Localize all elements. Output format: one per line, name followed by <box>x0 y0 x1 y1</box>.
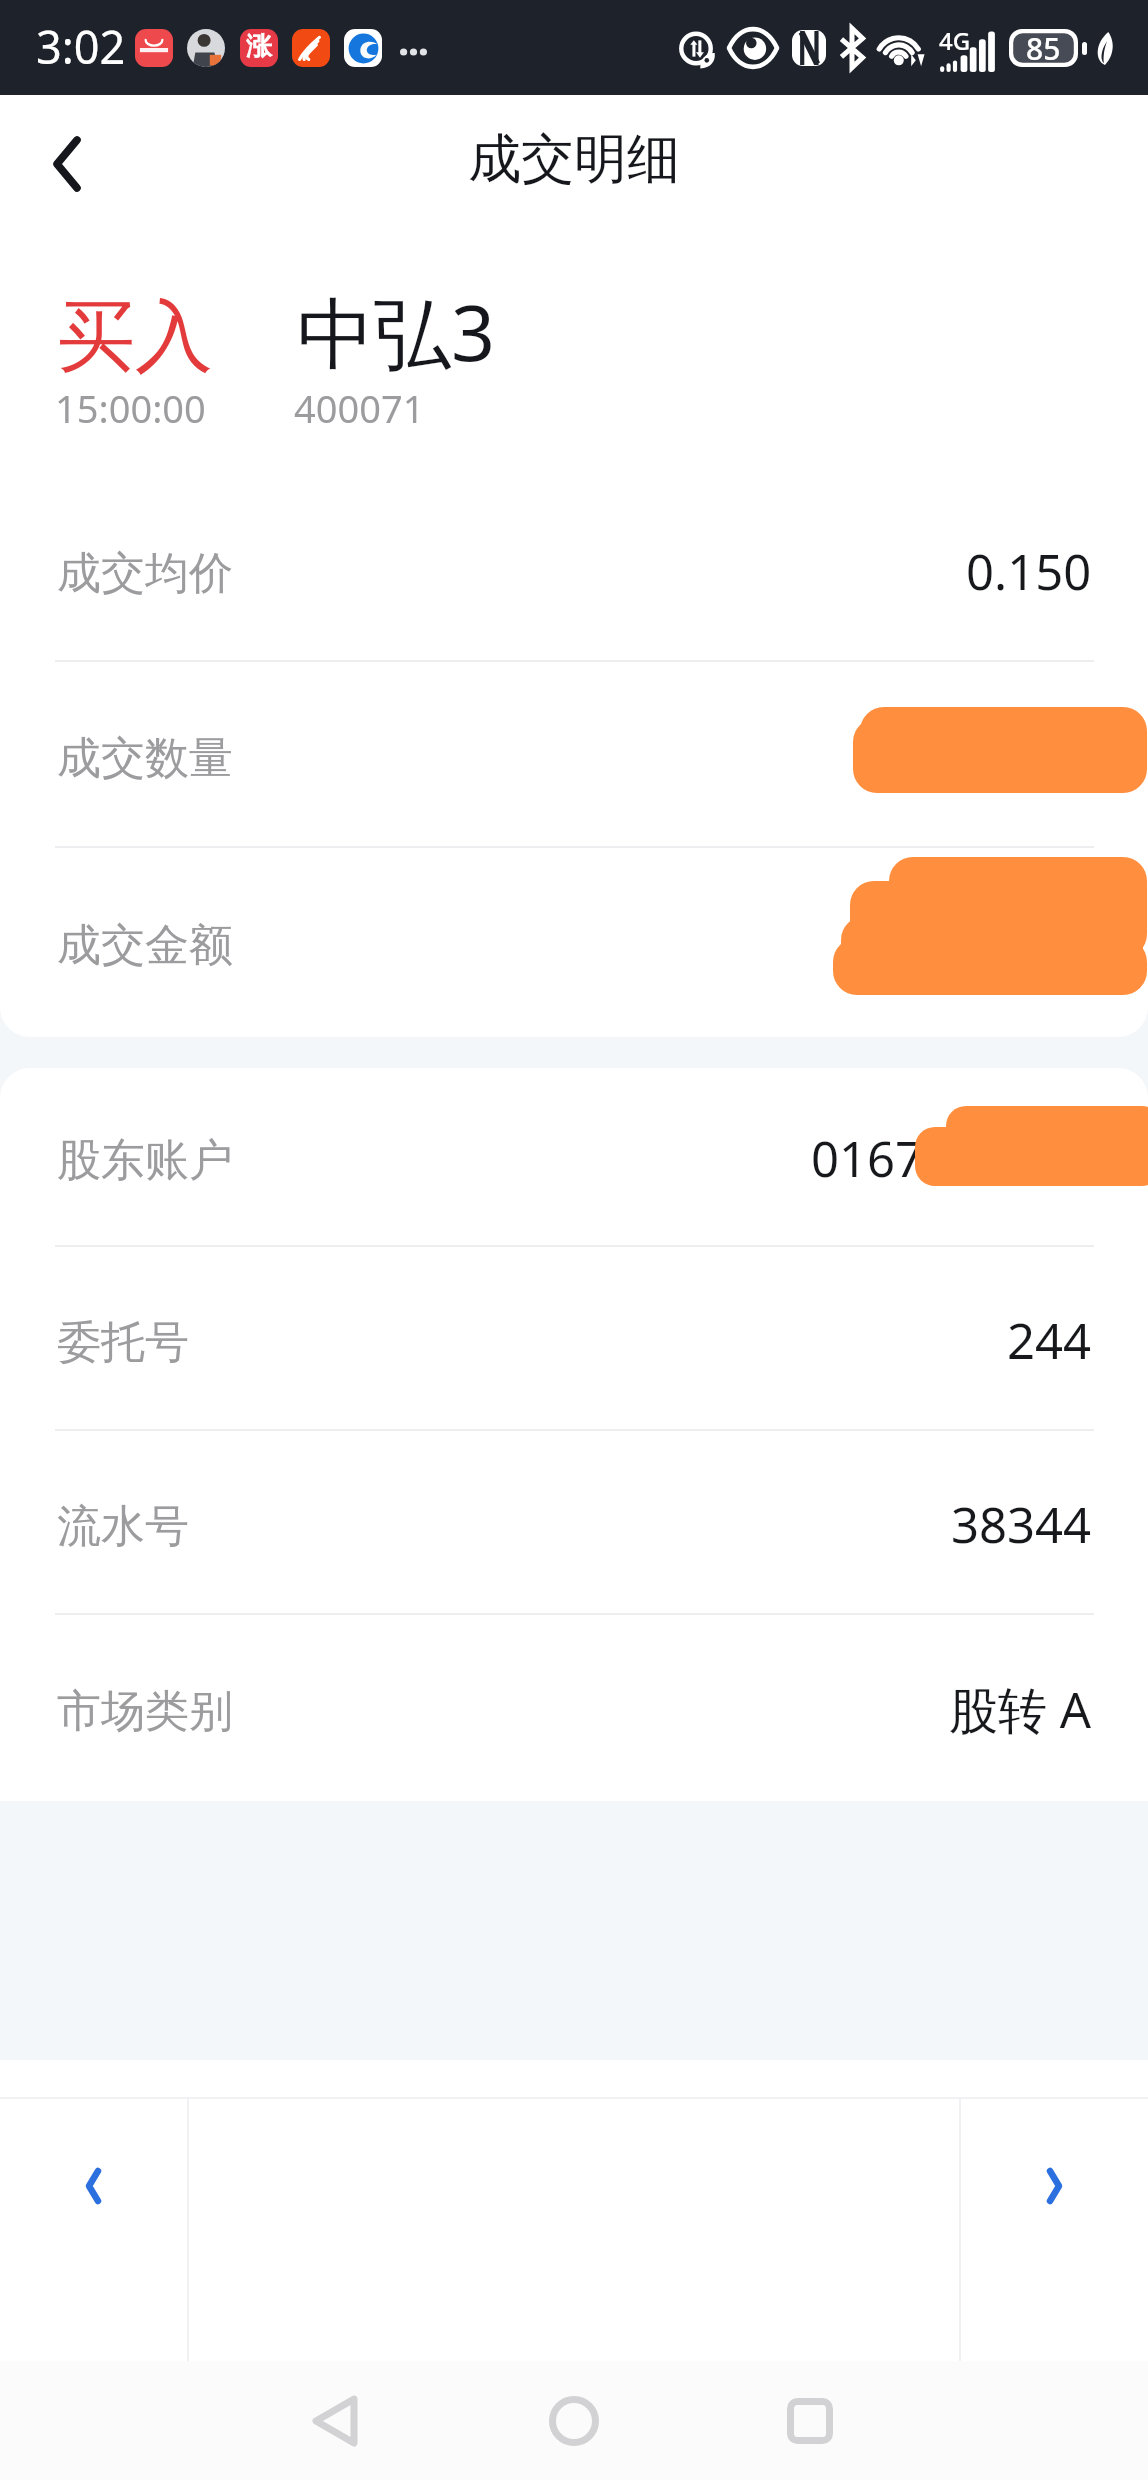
staticText: 85 <box>1026 28 1061 66</box>
button[interactable]: Recent apps <box>740 2361 880 2480</box>
staticText: 股转 A <box>949 1676 1092 1743</box>
button[interactable]: Back <box>2 99 132 229</box>
staticText: 成交数量 <box>57 731 233 786</box>
button[interactable]: Home <box>504 2361 644 2480</box>
staticText: 市场类别 <box>57 1684 233 1739</box>
button[interactable]: Next record <box>961 2099 1148 2361</box>
button[interactable]: 市场类别 <box>0 1615 1148 1801</box>
staticText: 委托号 <box>57 1315 189 1370</box>
staticText: 流水号 <box>57 1499 189 1554</box>
staticText: 400071 <box>294 382 425 434</box>
button[interactable]: 成交金额 <box>0 848 1148 1037</box>
staticText: 4G <box>939 24 971 57</box>
staticText: 成交明细 <box>468 126 680 193</box>
staticText: 244 <box>1007 1307 1092 1374</box>
button[interactable]: Back <box>265 2361 405 2480</box>
staticText: 成交金额 <box>57 918 233 973</box>
staticText: 成交均价 <box>57 546 233 601</box>
staticText: 涨 <box>246 30 272 63</box>
button[interactable]: Previous record <box>0 2099 187 2361</box>
staticText: 中弘3 <box>297 279 496 384</box>
button[interactable]: 股东账户 <box>0 1068 1148 1247</box>
staticText: 3:02 <box>36 16 126 77</box>
button[interactable]: 流水号 <box>0 1431 1148 1615</box>
staticText: 股东账户 <box>57 1133 233 1188</box>
staticText: 0167000000 <box>811 1125 1092 1192</box>
staticText: 38344 <box>951 1491 1092 1558</box>
button[interactable]: 成交数量 <box>0 662 1148 848</box>
button[interactable]: 成交均价 <box>0 478 1148 662</box>
button[interactable]: 委托号 <box>0 1247 1148 1431</box>
staticText: 买入 <box>57 288 213 386</box>
staticText: 0.150 <box>966 538 1092 605</box>
staticText: 15:00:00 <box>55 382 206 434</box>
